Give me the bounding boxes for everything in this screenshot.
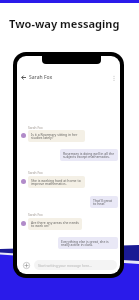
button[interactable]: Rosemary is doing well in all the subjec… xyxy=(60,149,118,161)
staticText: She is working hard at home to improve m… xyxy=(31,178,82,186)
button[interactable]: Is it a Rosemary sitting in her studies … xyxy=(28,130,85,142)
staticText: Sarah Fox xyxy=(29,74,53,81)
button[interactable]: That'll great to hear. xyxy=(90,196,118,208)
button[interactable]: She is working hard at home to improve m… xyxy=(28,176,85,188)
staticText: Sarah Fox xyxy=(28,171,43,175)
staticText: Sarah Fox xyxy=(28,126,43,130)
staticText: Everything else is great, she is really … xyxy=(61,239,115,247)
staticText: That'll great to hear. xyxy=(93,198,115,206)
button[interactable]: Add attachment xyxy=(23,262,30,269)
staticText: Two-way messaging xyxy=(9,16,120,31)
staticText: Are there any areas she needs to work on… xyxy=(31,220,79,228)
button[interactable]: Start writing your message here... xyxy=(34,260,117,270)
other: More options xyxy=(112,75,116,81)
button[interactable]: Everything else is great, she is really … xyxy=(58,237,118,249)
button[interactable]: Are there any areas she needs to work on… xyxy=(28,218,82,230)
staticText: Is it a Rosemary sitting in her studies … xyxy=(31,132,82,140)
staticText: Rosemary is doing well in all the subjec… xyxy=(63,151,115,159)
staticText: Sarah Fox xyxy=(28,213,43,217)
button[interactable]: Sarah Fox xyxy=(17,73,120,82)
staticText: Start writing your message here... xyxy=(38,263,92,268)
